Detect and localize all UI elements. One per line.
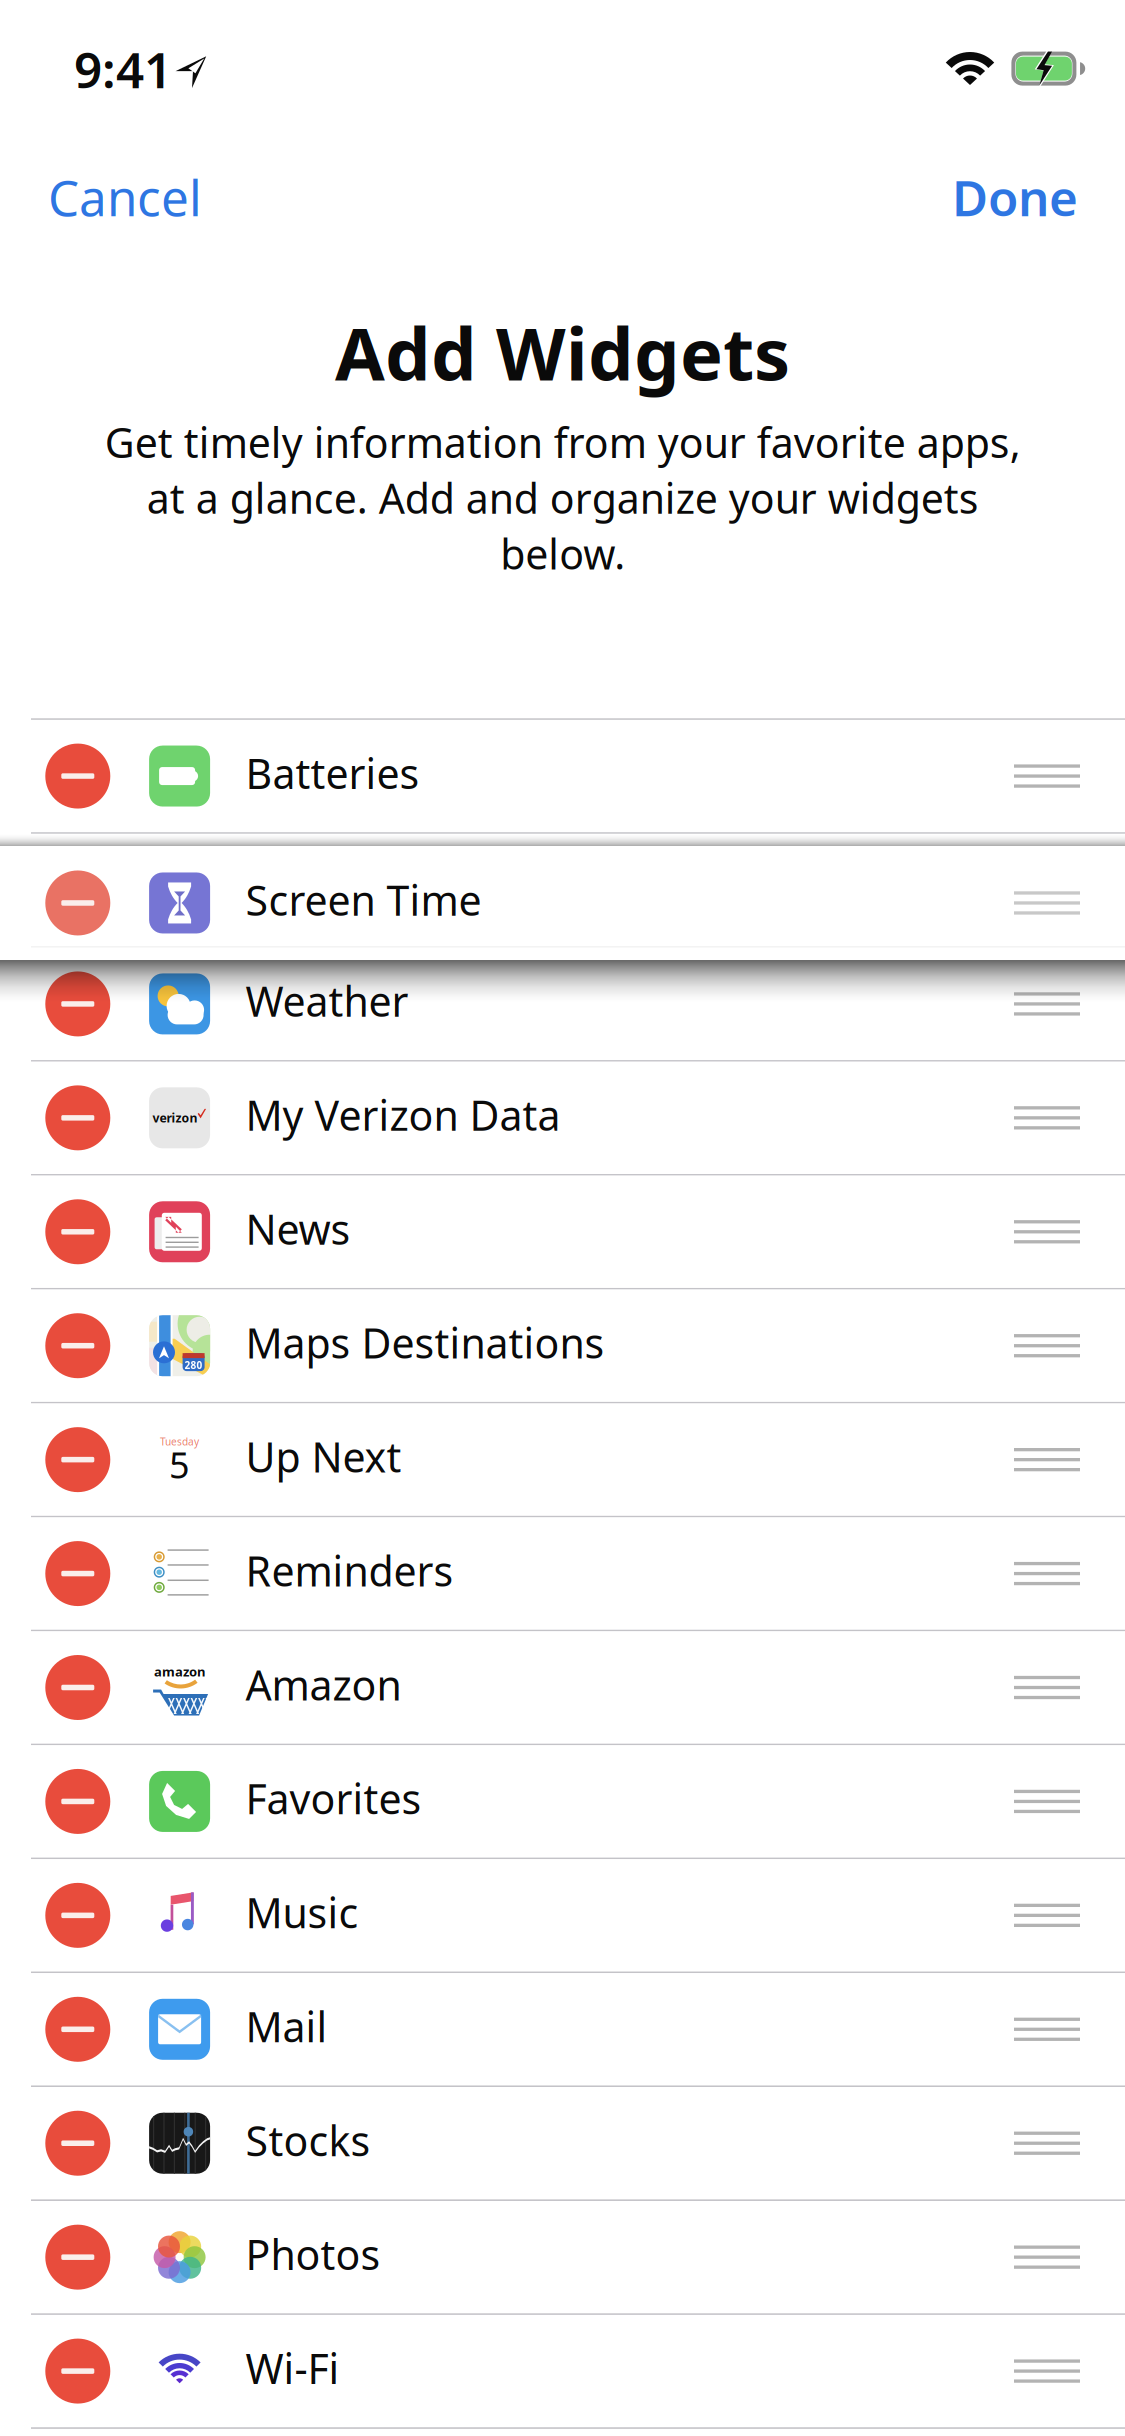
button[interactable]: Remove Amazon bbox=[0, 1631, 149, 1744]
staticText: 280 bbox=[185, 1358, 203, 1372]
button[interactable]: Reorder Weather bbox=[1014, 948, 1125, 1060]
staticText: Music bbox=[246, 1884, 359, 1940]
button[interactable]: Remove Wi-Fi bbox=[0, 2315, 149, 2427]
button[interactable]: Reorder Up Next bbox=[1014, 1403, 1125, 1516]
staticText: Favorites bbox=[246, 1770, 422, 1826]
staticText: Reminders bbox=[246, 1543, 454, 1598]
button[interactable]: Reorder Batteries bbox=[1014, 720, 1125, 832]
button[interactable]: Remove Up Next bbox=[0, 1403, 149, 1516]
button[interactable]: Reorder Amazon bbox=[1014, 1631, 1125, 1744]
staticText: amazon bbox=[154, 1663, 205, 1680]
button[interactable]: Reorder Photos bbox=[1014, 2201, 1125, 2313]
button[interactable]: Reorder News bbox=[1014, 1176, 1125, 1288]
staticText: Batteries bbox=[246, 745, 420, 801]
button[interactable]: Remove Maps Destinations bbox=[0, 1290, 149, 1402]
staticText: Done bbox=[952, 163, 1078, 231]
staticText: News bbox=[246, 1201, 351, 1257]
staticText: Amazon bbox=[246, 1657, 402, 1712]
button[interactable]: Remove Screen Time bbox=[0, 847, 149, 959]
staticText: Add Widgets bbox=[335, 303, 790, 402]
staticText: 5 bbox=[169, 1440, 190, 1489]
staticText: Mail bbox=[246, 1998, 328, 2054]
staticText: Cancel bbox=[48, 163, 202, 231]
button[interactable]: Reorder Stocks bbox=[1014, 2087, 1125, 2199]
staticText: verizon bbox=[153, 1109, 198, 1126]
button[interactable]: Reorder My Verizon Data bbox=[1014, 1062, 1125, 1174]
button[interactable]: Remove Batteries bbox=[0, 720, 149, 832]
staticText: Maps Destinations bbox=[246, 1315, 605, 1371]
button[interactable]: Reorder Mail bbox=[1014, 1973, 1125, 2085]
staticText: Photos bbox=[246, 2226, 381, 2282]
button[interactable]: Cancel bbox=[0, 132, 248, 264]
staticText: Stocks bbox=[246, 2112, 371, 2168]
staticText: Tuesday bbox=[160, 1435, 199, 1448]
button[interactable]: Reorder Wi-Fi bbox=[1014, 2315, 1125, 2427]
staticText: Screen Time bbox=[246, 872, 482, 928]
button[interactable]: Reorder Screen Time bbox=[1014, 847, 1125, 959]
button[interactable]: Remove Reminders bbox=[0, 1517, 149, 1630]
staticText: Up Next bbox=[246, 1429, 402, 1484]
button[interactable]: Remove Photos bbox=[0, 2201, 149, 2313]
button[interactable]: Remove Weather bbox=[0, 948, 149, 1060]
button[interactable]: Reorder Maps Destinations bbox=[1014, 1290, 1125, 1402]
staticText: Weather bbox=[246, 973, 409, 1029]
button[interactable]: Reorder Reminders bbox=[1014, 1517, 1125, 1630]
button[interactable]: Remove Stocks bbox=[0, 2087, 149, 2199]
button[interactable]: Remove My Verizon Data bbox=[0, 1062, 149, 1174]
staticText: Wi-Fi bbox=[246, 2340, 340, 2396]
button[interactable]: Remove Music bbox=[0, 1859, 149, 1971]
button[interactable]: Reorder Music bbox=[1014, 1859, 1125, 1971]
staticText: 9:41 bbox=[74, 35, 172, 103]
button[interactable]: Remove Favorites bbox=[0, 1745, 149, 1858]
button[interactable]: Remove News bbox=[0, 1176, 149, 1288]
staticText: Get timely information from your favorit… bbox=[104, 414, 1020, 582]
button[interactable]: Remove Mail bbox=[0, 1973, 149, 2085]
button[interactable]: Reorder Favorites bbox=[1014, 1745, 1125, 1858]
staticText: My Verizon Data bbox=[246, 1087, 561, 1143]
button[interactable]: Done bbox=[908, 132, 1125, 264]
